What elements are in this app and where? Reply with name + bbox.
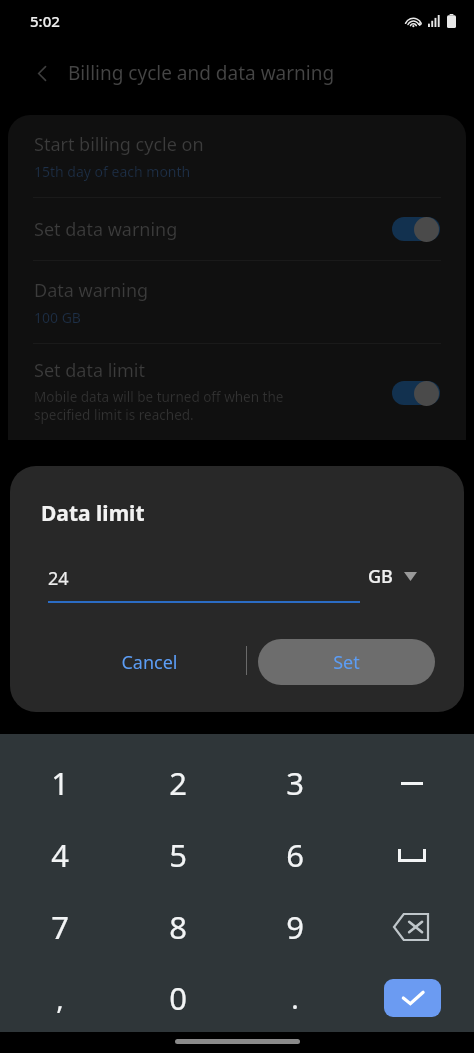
button[interactable]: Cancel	[72, 640, 226, 684]
button[interactable]: Space	[354, 819, 470, 891]
staticText: 9	[286, 906, 304, 948]
button[interactable]: Toggle	[392, 216, 440, 242]
button[interactable]: Set	[258, 639, 435, 685]
button[interactable]: Backspace	[354, 891, 470, 963]
staticText: Set data warning	[34, 217, 178, 242]
button[interactable]: Minus	[354, 747, 470, 819]
staticText: 3	[286, 762, 304, 804]
staticText: 4	[51, 834, 69, 876]
button[interactable]: 6	[237, 819, 353, 891]
button[interactable]: Back	[22, 53, 62, 93]
button[interactable]: 0	[120, 962, 236, 1034]
staticText: 100 GB	[34, 308, 81, 327]
button[interactable]: Enter	[354, 962, 470, 1034]
button[interactable]: 8	[120, 891, 236, 963]
staticText: GB	[368, 564, 393, 589]
staticText: 8	[169, 906, 187, 948]
staticText: Set	[333, 650, 360, 675]
staticText: Data limit	[41, 499, 145, 528]
button[interactable]: .	[237, 962, 353, 1034]
button[interactable]: 7	[2, 891, 118, 963]
staticText: Set data limit	[34, 358, 145, 383]
staticText: 5	[169, 834, 187, 876]
button[interactable]: GB	[368, 564, 417, 589]
staticText: 2	[169, 762, 187, 804]
button[interactable]: Set data warning	[8, 198, 466, 260]
button[interactable]: 5	[120, 819, 236, 891]
button[interactable]: 3	[237, 747, 353, 819]
staticText: 0	[169, 977, 187, 1019]
staticText: 5:02	[30, 11, 60, 31]
staticText: 1	[51, 762, 69, 804]
button[interactable]: Start billing cycle on	[8, 115, 466, 197]
staticText: Data warning	[34, 278, 149, 303]
button[interactable]: Toggle	[392, 380, 440, 406]
staticText: .	[291, 979, 299, 1017]
button[interactable]: ,	[2, 962, 118, 1034]
button[interactable]: 9	[237, 891, 353, 963]
staticText: ,	[56, 979, 64, 1017]
staticText: 6	[286, 834, 304, 876]
button[interactable]: 4	[2, 819, 118, 891]
staticText: 7	[51, 906, 69, 948]
staticText: Cancel	[121, 650, 178, 675]
staticText: Mobile data will be turned off when the …	[34, 388, 284, 424]
button[interactable]: 1	[2, 747, 118, 819]
staticText: 15th day of each month	[34, 162, 191, 181]
button[interactable]: 2	[120, 747, 236, 819]
button[interactable]: Data warning	[8, 261, 466, 343]
staticText: 24	[48, 566, 69, 591]
staticText: Start billing cycle on	[34, 132, 204, 157]
staticText: Billing cycle and data warning	[68, 60, 335, 86]
button[interactable]: Set data limit	[8, 344, 466, 440]
